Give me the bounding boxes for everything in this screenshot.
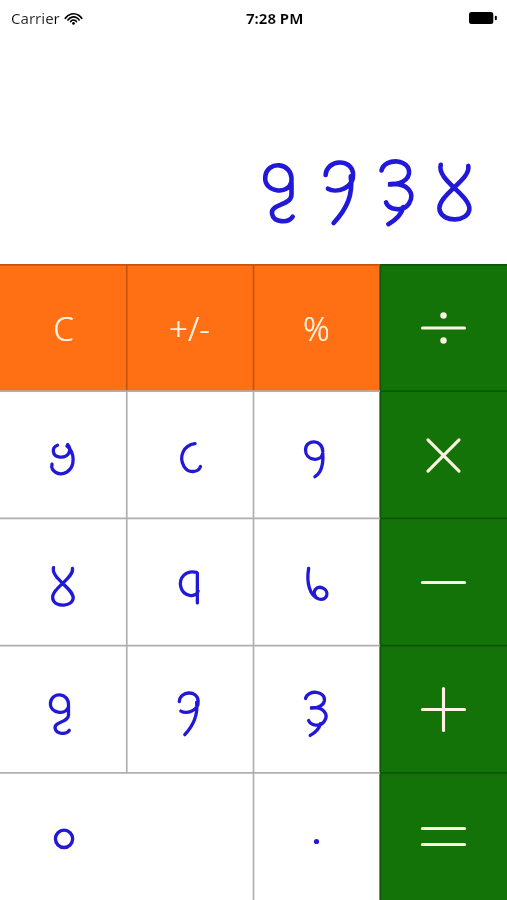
button[interactable]: Digit 7 (0, 392, 126, 519)
button[interactable]: Divide (380, 264, 507, 392)
button[interactable]: Clear (0, 264, 126, 392)
button[interactable]: Digit 6 (253, 519, 380, 646)
staticText: 7:28 PM (246, 8, 304, 28)
button[interactable]: Percent (253, 264, 380, 392)
staticText: % (303, 306, 330, 351)
button[interactable]: Digit 5 (126, 519, 253, 646)
button[interactable]: Subtract (380, 519, 507, 646)
staticText: +/- (169, 306, 210, 351)
staticText: Carrier (11, 8, 60, 28)
button[interactable]: Digit 4 (0, 519, 126, 646)
button[interactable]: Digit 2 (126, 646, 253, 773)
button[interactable]: Digit 8 (126, 392, 253, 519)
staticText: C (53, 306, 74, 351)
button[interactable]: Digit 0 (0, 773, 253, 900)
button[interactable]: Equals (380, 773, 507, 900)
button[interactable]: Decimal point (253, 773, 380, 900)
button[interactable]: Digit 3 (253, 646, 380, 773)
button[interactable]: Toggle sign (126, 264, 253, 392)
button[interactable]: Digit 9 (253, 392, 380, 519)
button[interactable]: Multiply (380, 392, 507, 519)
button[interactable]: Add (380, 646, 507, 773)
button[interactable]: Digit 1 (0, 646, 126, 773)
